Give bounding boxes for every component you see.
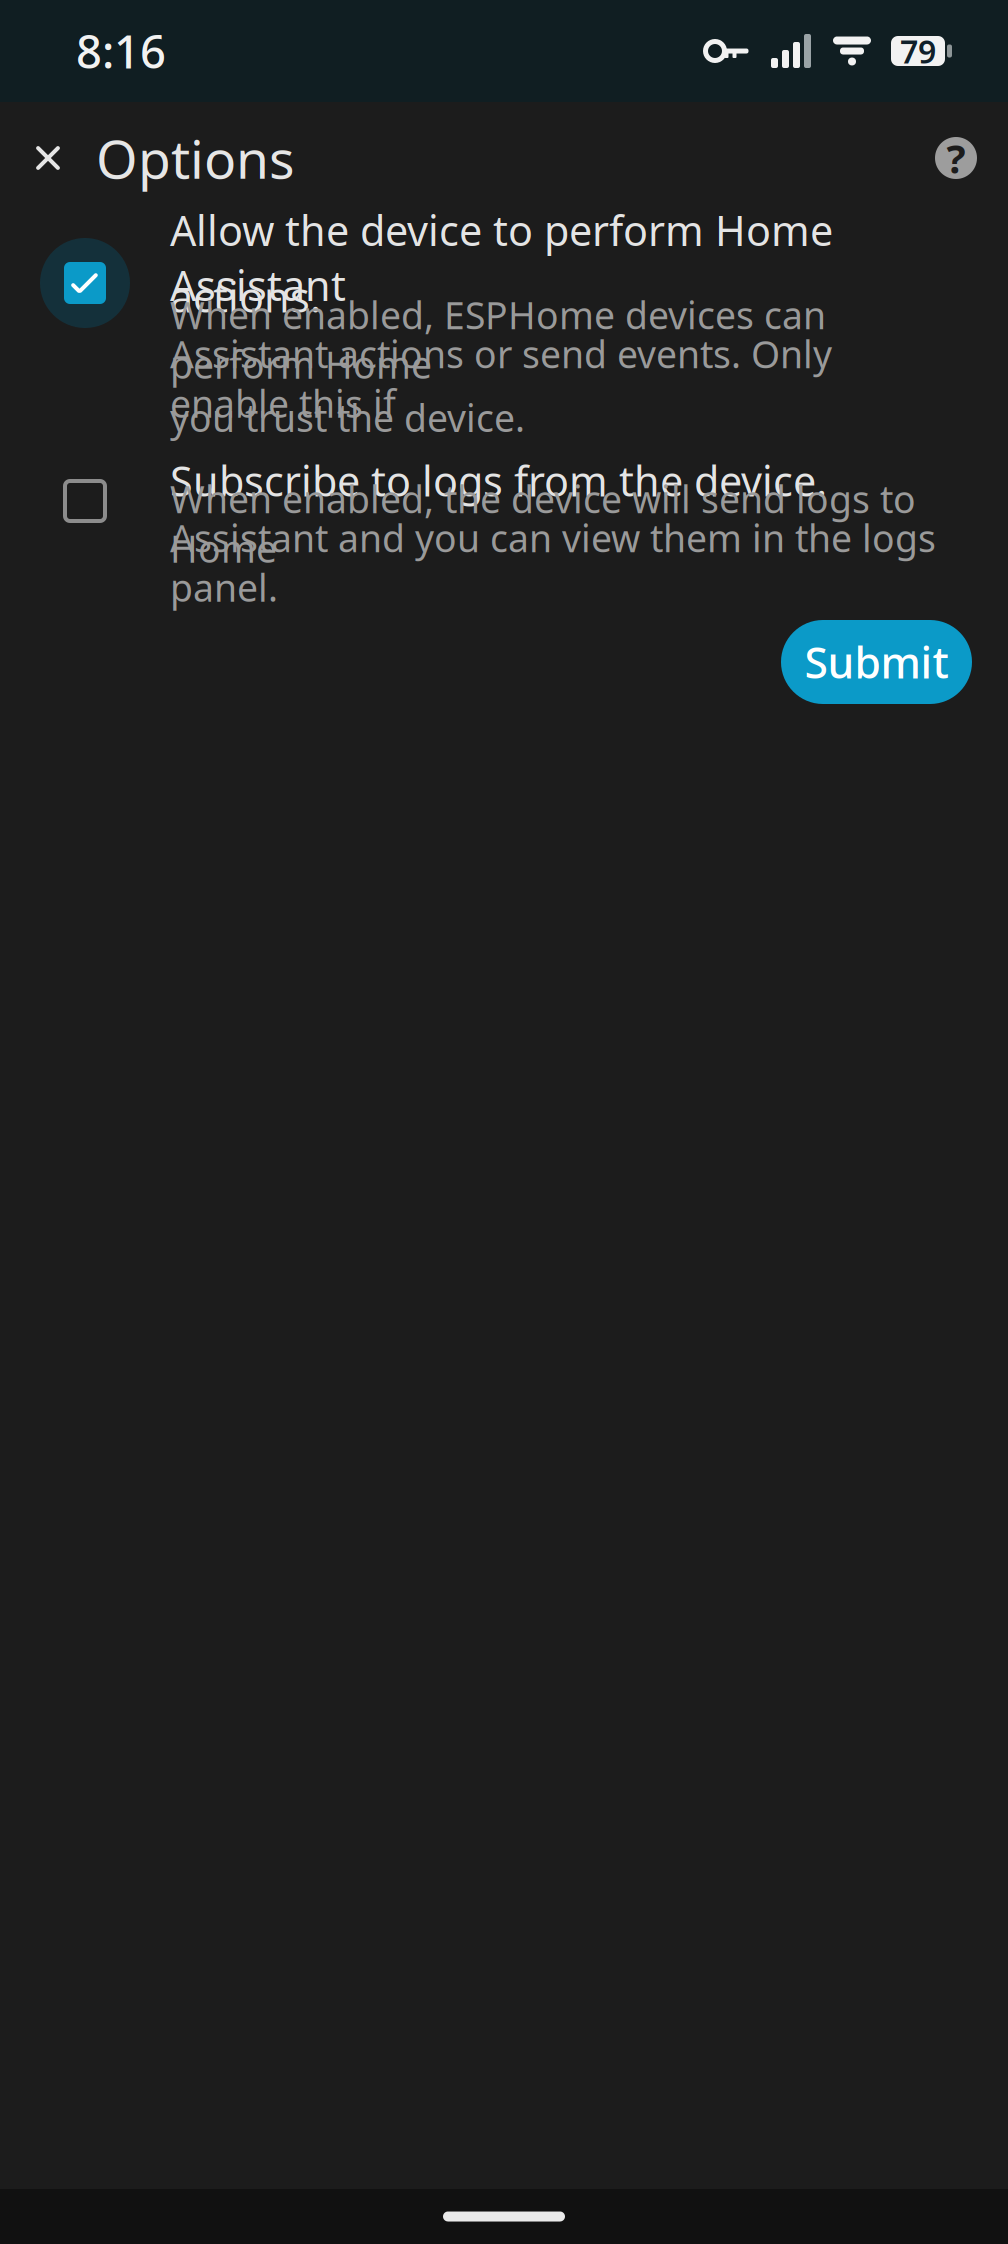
staticText: When enabled, ESPHome devices can perfor… (170, 290, 826, 389)
button[interactable]: Subscribe to logs from the device. (0, 437, 1008, 582)
staticText: you trust the device. (170, 393, 525, 442)
button[interactable]: Close (0, 102, 96, 214)
staticText: 8:16 (76, 21, 166, 81)
staticText: When enabled, the device will send logs … (170, 474, 916, 573)
staticText: 79 (900, 30, 936, 72)
button[interactable]: Submit (781, 620, 972, 704)
staticText: actions. (170, 269, 321, 324)
staticText: Options (96, 123, 295, 193)
staticText: ? (946, 131, 965, 184)
staticText: Allow the device to perform Home Assista… (170, 203, 833, 312)
button[interactable]: Help (904, 102, 1008, 214)
staticText: Assistant actions or send events. Only e… (170, 329, 832, 428)
staticText: Assistant and you can view them in the l… (170, 513, 936, 612)
staticText: Subscribe to logs from the device. (170, 453, 827, 508)
button[interactable]: Allow the device to perform Home Assista… (0, 214, 1008, 437)
staticText: Submit (804, 634, 948, 690)
